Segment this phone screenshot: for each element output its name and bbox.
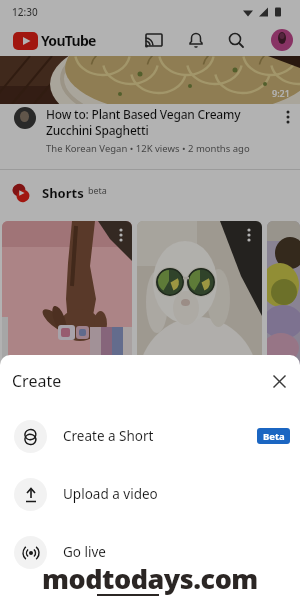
staticText: The Korean Vegan • 12K views • 2 months … — [46, 142, 250, 155]
staticText: beta — [88, 184, 107, 196]
staticText: Upload a video — [63, 485, 158, 503]
button[interactable] — [273, 375, 286, 388]
button[interactable] — [137, 221, 262, 441]
button[interactable] — [187, 31, 205, 49]
staticText: modtodays.com — [42, 560, 258, 597]
button[interactable] — [286, 110, 290, 124]
button[interactable] — [2, 221, 132, 441]
staticText: Shorts — [42, 184, 84, 202]
button[interactable]: Go live — [0, 523, 300, 581]
staticText: Create a Short — [63, 427, 154, 445]
button[interactable] — [271, 29, 293, 51]
staticText: Go live — [63, 543, 106, 561]
button[interactable]: Create a Short — [0, 407, 300, 465]
button[interactable]: How to: Plant Based Vegan Creamy — [0, 104, 300, 170]
button[interactable]: 9:21 — [0, 56, 300, 104]
button[interactable] — [267, 221, 300, 441]
button[interactable]: YouTube — [13, 31, 96, 50]
staticText: 9:21 — [272, 87, 290, 99]
staticText: Beta — [263, 430, 285, 443]
staticText: YouTube — [41, 31, 96, 50]
button[interactable]: Upload a video — [0, 465, 300, 523]
staticText: Zucchini Spaghetti — [46, 122, 149, 138]
button[interactable] — [227, 31, 245, 49]
staticText: 12:30 — [12, 5, 38, 19]
staticText: Create — [12, 370, 62, 392]
button[interactable] — [145, 31, 163, 49]
staticText: How to: Plant Based Vegan Creamy — [46, 106, 241, 122]
